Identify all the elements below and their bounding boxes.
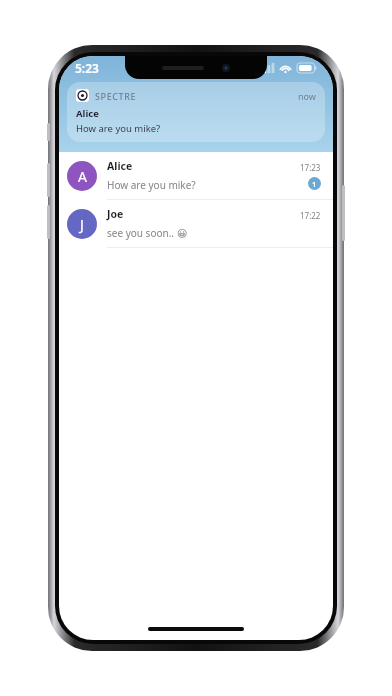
staticText: A: [78, 167, 87, 186]
staticText: How are you mike?: [107, 178, 196, 192]
staticText: see you soon.. 😀: [107, 226, 188, 240]
staticText: 17:22: [300, 210, 321, 221]
button[interactable]: J: [59, 200, 333, 247]
staticText: Alice: [107, 159, 133, 173]
staticText: 5:23: [75, 60, 99, 76]
staticText: How are you mike?: [76, 122, 161, 135]
staticText: Alice: [76, 107, 99, 120]
staticText: Joe: [107, 207, 124, 221]
staticText: 17:23: [300, 162, 321, 173]
staticText: SPECTRE: [95, 90, 137, 102]
staticText: 1: [312, 179, 317, 189]
staticText: J: [80, 215, 84, 234]
button[interactable]: A: [59, 152, 333, 199]
staticText: now: [298, 90, 316, 102]
button[interactable]: SPECTRE: [67, 82, 325, 142]
